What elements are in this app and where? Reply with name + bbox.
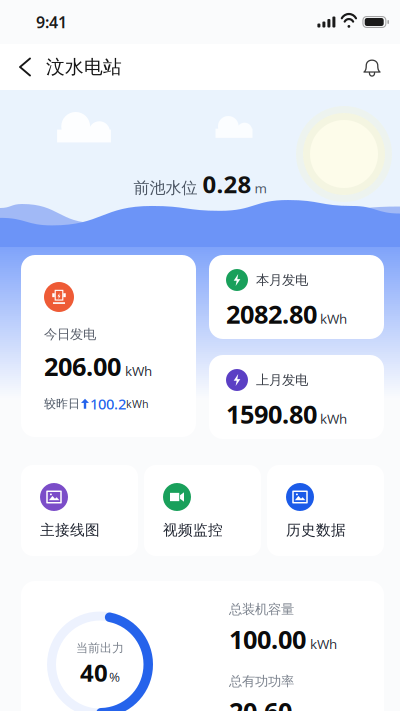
button[interactable]: 返回 (0, 44, 46, 90)
staticText: 前池水位 (133, 178, 202, 198)
staticText: kWh (125, 362, 152, 380)
staticText: 206.00 (44, 349, 121, 383)
staticText: 2082.80 (226, 297, 317, 331)
button[interactable]: 视频监控 (144, 465, 261, 556)
staticText: 主接线图 (40, 521, 100, 539)
staticText: 较昨日 (44, 396, 80, 411)
staticText: 历史数据 (286, 521, 346, 539)
button[interactable]: 历史数据 (267, 465, 384, 556)
staticText: 总装机容量 (229, 601, 294, 617)
staticText: 本月发电 (256, 272, 308, 288)
staticText: 今日发电 (44, 326, 96, 342)
staticText: 0.28 (202, 168, 251, 200)
staticText: 1590.80 (226, 397, 317, 431)
staticText: 100.2 (90, 394, 126, 413)
staticText: 上月发电 (256, 372, 308, 388)
staticText: 视频监控 (163, 521, 223, 539)
staticText: m (251, 179, 266, 197)
staticText: kWh (320, 310, 347, 327)
staticText: % (109, 668, 120, 685)
staticText: kWh (310, 635, 337, 653)
staticText: 40 (80, 656, 108, 688)
staticText: 当前出力 (76, 641, 124, 655)
button[interactable]: 主接线图 (21, 465, 138, 556)
staticText: kWh (320, 410, 347, 427)
staticText: 100.00 (229, 622, 306, 656)
staticText: 20.60 (229, 694, 292, 711)
staticText: 汶水电站 (46, 55, 122, 78)
staticText: kWh (126, 397, 149, 411)
staticText: 9:41 (36, 11, 67, 33)
staticText: 总有功功率 (229, 673, 294, 689)
button[interactable]: 通知 (344, 44, 400, 90)
